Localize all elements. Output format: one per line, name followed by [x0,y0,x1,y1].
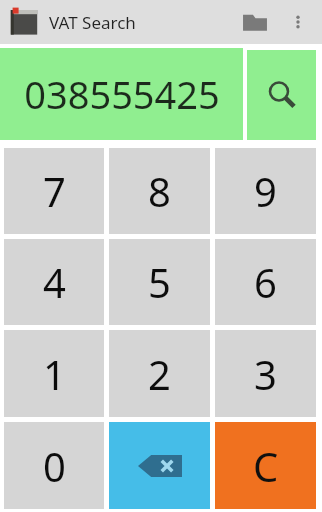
button[interactable]: Backspace [109,422,210,509]
staticText: 038555425 [24,68,220,120]
button[interactable]: 5 [109,239,210,325]
staticText: 3 [254,347,277,401]
button[interactable]: Search [247,50,316,140]
staticText: 8 [148,164,171,218]
button[interactable]: 0 [4,422,104,509]
button[interactable]: 9 [215,148,316,234]
staticText: 7 [43,164,66,218]
button[interactable]: 6 [215,239,316,325]
staticText: 6 [254,255,277,309]
staticText: 4 [43,255,66,309]
staticText: 9 [254,164,277,218]
button[interactable]: 3 [215,330,316,417]
button[interactable]: 038555425 [0,48,243,140]
button[interactable]: 2 [109,330,210,417]
staticText: C [253,439,279,493]
staticText: 1 [43,347,66,401]
button[interactable]: More options [278,2,318,42]
button[interactable]: C [215,422,316,509]
button[interactable]: 4 [4,239,104,325]
staticText: VAT Search [49,11,136,34]
button[interactable]: 7 [4,148,104,234]
staticText: 2 [148,347,171,401]
staticText: 5 [148,255,171,309]
staticText: 0 [43,439,66,493]
button[interactable]: 1 [4,330,104,417]
button[interactable]: Open folder [232,0,278,44]
button[interactable]: 8 [109,148,210,234]
